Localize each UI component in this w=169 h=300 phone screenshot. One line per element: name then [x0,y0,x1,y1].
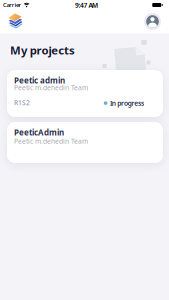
staticText: In progress [110,99,144,108]
staticText: R1S2 [14,98,30,107]
staticText: Peetic m.dehedin Team [14,136,88,146]
staticText: Peetic admin [14,75,65,86]
staticText: Carrier [3,1,22,9]
staticText: 9:47 AM [75,1,98,10]
staticText: PeeticAdmin [14,127,64,138]
button[interactable]: Profile [144,13,161,30]
button[interactable]: Peetic admin [7,70,163,117]
button[interactable]: PeeticAdmin [7,122,163,163]
staticText: My projects [10,42,75,58]
staticText: Peetic m.dehedin Team [14,83,88,92]
